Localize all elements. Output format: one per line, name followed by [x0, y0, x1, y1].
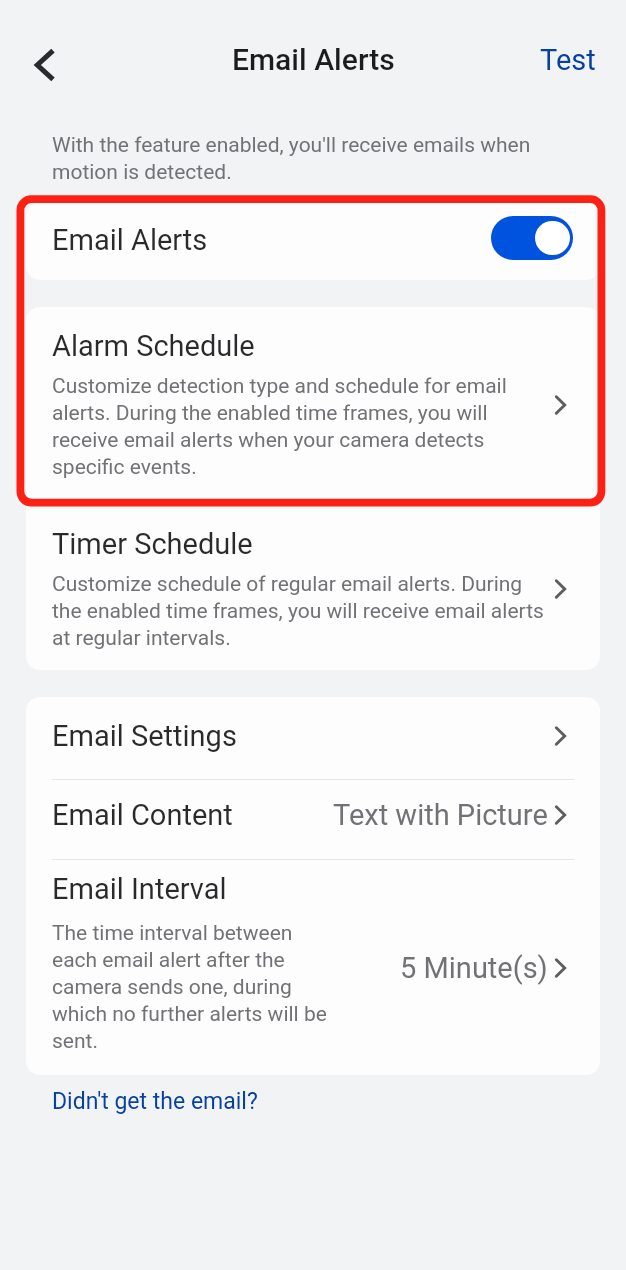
staticText: 5 Minute(s) [400, 951, 548, 985]
button[interactable]: Back [21, 41, 69, 89]
button[interactable]: Test [530, 35, 606, 85]
staticText: Email Alerts [52, 223, 208, 257]
staticText: Email Interval [52, 872, 227, 906]
button[interactable]: Alarm Schedule [26, 307, 600, 505]
staticText: Customize detection type and schedule fo… [52, 374, 550, 480]
staticText: With the feature enabled, you'll receive… [52, 133, 552, 185]
staticText: Email Settings [52, 719, 237, 753]
staticText: Email Alerts [232, 42, 395, 77]
button[interactable]: Email Alerts toggle [491, 216, 573, 260]
button[interactable]: Timer Schedule [26, 505, 600, 670]
staticText: Email Content [52, 798, 233, 832]
staticText: Alarm Schedule [52, 329, 255, 363]
staticText: Text with Picture [333, 798, 548, 832]
staticText: Timer Schedule [52, 527, 253, 561]
staticText: The time interval between each email ale… [52, 921, 332, 1054]
button[interactable]: Didn't get the email? [42, 1080, 268, 1123]
staticText: Customize schedule of regular email aler… [52, 572, 550, 651]
button[interactable]: Email Interval [26, 860, 600, 1075]
button[interactable]: Email Alerts [26, 202, 600, 280]
button[interactable]: Email Settings [26, 697, 600, 779]
staticText: Didn't get the email? [52, 1088, 258, 1115]
staticText: Test [540, 43, 596, 77]
button[interactable]: Email Content [26, 780, 600, 859]
